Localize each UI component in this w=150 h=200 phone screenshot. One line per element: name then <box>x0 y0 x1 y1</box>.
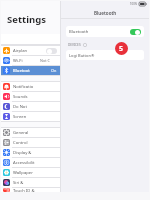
staticText: Sounds <box>13 94 28 100</box>
button[interactable]: Control Centre <box>1 138 60 147</box>
other: Step 5 callout <box>115 42 128 55</box>
staticText: Control Centre <box>13 140 35 146</box>
staticText: Airplane Mode <box>13 48 29 54</box>
staticText: Siri & Search <box>13 180 35 186</box>
staticText: Screen Time <box>13 114 35 120</box>
staticText: Accessibility <box>13 160 35 166</box>
button[interactable]: Do Not Disturb <box>1 102 60 111</box>
staticText: Bluetooth <box>69 29 89 35</box>
button[interactable]: Siri & Search <box>1 178 60 187</box>
staticText: Wallpaper <box>13 170 33 176</box>
staticText: General <box>13 130 29 136</box>
staticText: 100% <box>130 2 138 6</box>
button[interactable]: Toggle off <box>46 48 57 54</box>
staticText: Do Not Disturb <box>13 104 35 110</box>
button[interactable]: Bluetooth <box>1 66 60 75</box>
button[interactable]: Bluetooth <box>66 26 144 37</box>
button[interactable]: Notifications <box>1 82 60 91</box>
staticText: Logi Button® <box>69 53 95 58</box>
button[interactable]: Wi-Fi <box>1 56 60 65</box>
staticText: Display & Brightness <box>13 150 35 156</box>
staticText: Wi-Fi <box>13 58 23 64</box>
staticText: Notifications <box>13 84 35 90</box>
staticText: Not C <box>40 58 50 63</box>
staticText: Settings <box>7 13 46 26</box>
staticText: Touch ID & Passcode <box>13 188 35 192</box>
button[interactable]: Screen Time <box>1 112 60 121</box>
button[interactable]: Touch ID & Passcode <box>1 188 60 192</box>
staticText: Bluetooth <box>94 10 117 16</box>
button[interactable]: Logi Button® <box>66 50 144 60</box>
button[interactable]: Display & Brightness <box>1 148 60 157</box>
staticText: 5 <box>119 44 124 54</box>
button[interactable]: Sounds <box>1 92 60 101</box>
button[interactable]: Accessibility <box>1 158 60 167</box>
staticText: DEVICES <box>68 43 81 47</box>
button[interactable]: Airplane Mode <box>1 46 60 55</box>
staticText: On <box>51 68 57 73</box>
button[interactable]: Toggle on <box>130 29 141 35</box>
staticText: Bluetooth <box>13 68 32 74</box>
button[interactable]: Wallpaper <box>1 168 60 177</box>
button[interactable]: General <box>1 128 60 137</box>
